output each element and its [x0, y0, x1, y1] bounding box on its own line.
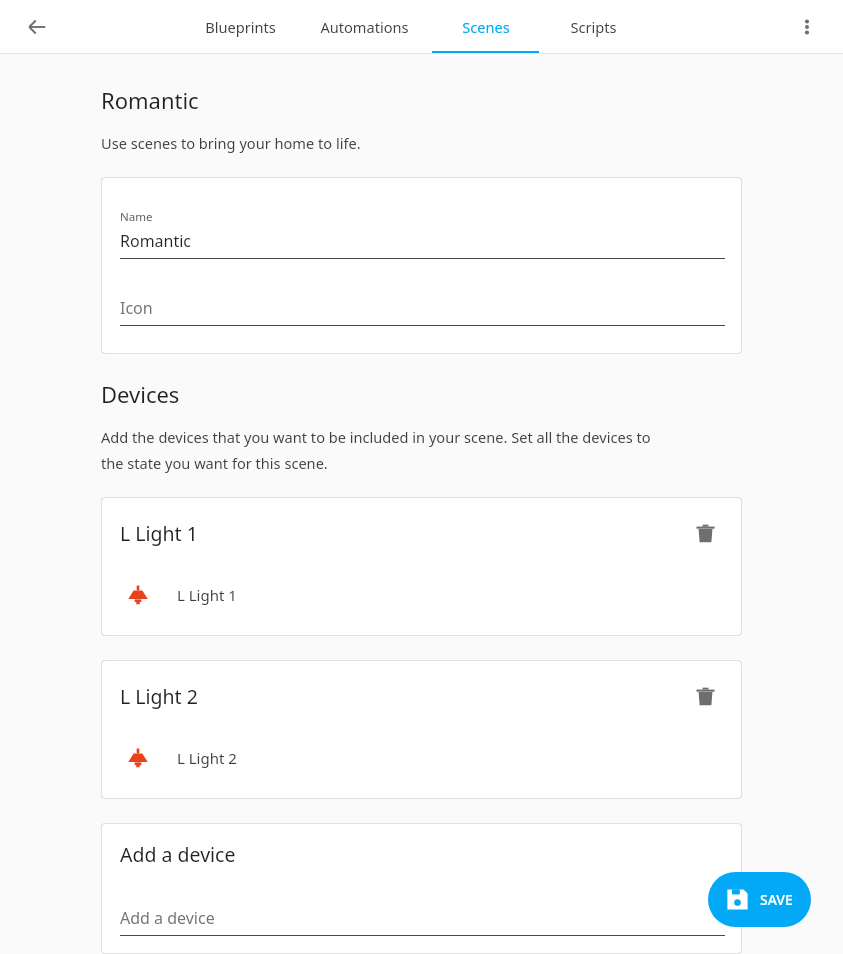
staticText: Add the devices that you want to be incl… [101, 427, 651, 447]
staticText: Scripts [570, 17, 617, 37]
staticText: Add a device [120, 841, 236, 868]
button[interactable]: L Light 1 [102, 575, 741, 615]
button[interactable]: Scenes [432, 0, 539, 54]
button[interactable]: Automations [297, 0, 432, 54]
staticText: Romantic [101, 85, 199, 115]
button[interactable]: Back [13, 3, 61, 51]
staticText: Name [120, 209, 153, 225]
staticText: L Light 1 [177, 585, 237, 605]
button[interactable]: Add a device [120, 907, 725, 929]
button[interactable]: SAVE [708, 872, 811, 927]
staticText: the state you want for this scene. [101, 453, 328, 473]
staticText: Blueprints [205, 17, 276, 37]
button[interactable]: L Light 2 [102, 738, 741, 778]
staticText: L Light 2 [177, 748, 237, 768]
button[interactable]: Scripts [539, 0, 647, 54]
button[interactable]: More options [783, 3, 831, 51]
button[interactable]: Delete L Light 1 [685, 513, 725, 553]
staticText: L Light 2 [120, 683, 198, 710]
staticText: SAVE [760, 890, 793, 909]
staticText: Romantic [120, 230, 192, 252]
staticText: Use scenes to bring your home to life. [101, 133, 361, 153]
staticText: Add a device [120, 907, 215, 929]
button[interactable]: Blueprints [184, 0, 297, 54]
staticText: Devices [101, 379, 180, 409]
staticText: Automations [320, 17, 409, 37]
staticText: L Light 1 [120, 520, 198, 547]
button[interactable]: Delete L Light 2 [685, 676, 725, 716]
staticText: Icon [120, 297, 153, 319]
staticText: Scenes [462, 17, 510, 37]
